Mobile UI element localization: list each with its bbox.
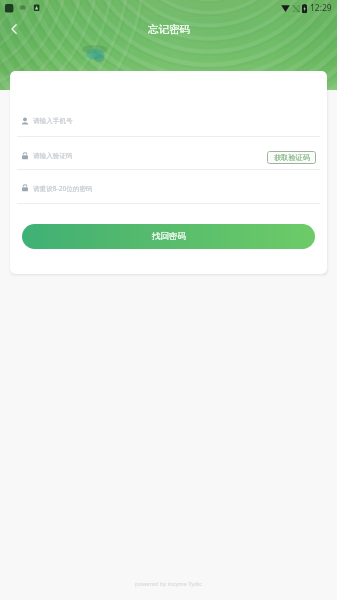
staticText: 12:29 [310, 2, 332, 14]
staticText: 请输入手机号 [33, 117, 73, 125]
staticText: 获取验证码 [274, 153, 310, 162]
button[interactable]: 找回密码 [22, 224, 315, 249]
button[interactable]: 获取验证码 [267, 151, 316, 164]
staticText: 请重设8-20位的密码 [33, 184, 93, 193]
staticText: 找回密码 [152, 231, 186, 242]
staticText: 忘记密码 [148, 23, 190, 36]
button[interactable]: Back [0, 15, 28, 43]
staticText: powered by inzyme Tydic [135, 580, 202, 588]
staticText: 请输入验证码 [33, 152, 73, 160]
